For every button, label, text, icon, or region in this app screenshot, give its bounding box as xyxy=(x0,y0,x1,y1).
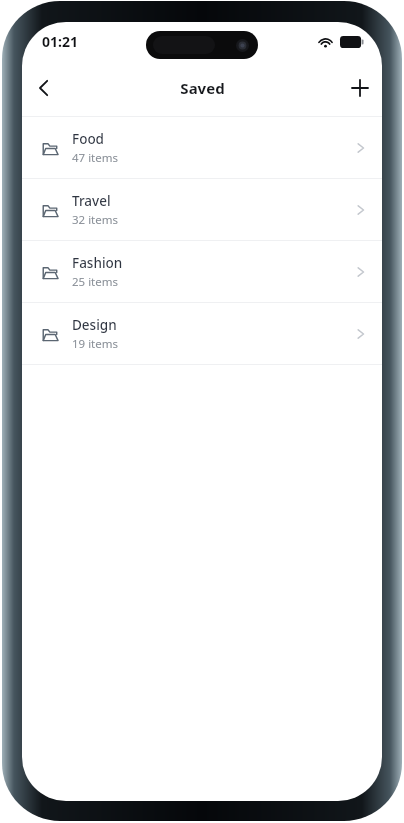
button[interactable]: Add xyxy=(338,66,382,110)
button[interactable]: Design xyxy=(22,303,382,364)
button[interactable]: Back xyxy=(22,66,66,110)
staticText: 32 items xyxy=(72,212,119,228)
staticText: Travel xyxy=(72,192,111,210)
staticText: Fashion xyxy=(72,254,123,272)
button[interactable]: Food xyxy=(22,117,382,178)
staticText: Design xyxy=(72,316,117,334)
staticText: Saved xyxy=(180,78,225,98)
staticText: 25 items xyxy=(72,274,119,290)
staticText: 19 items xyxy=(72,336,119,352)
button[interactable]: Travel xyxy=(22,179,382,240)
button[interactable]: Fashion xyxy=(22,241,382,302)
staticText: 47 items xyxy=(72,150,119,166)
staticText: 01:21 xyxy=(42,32,78,51)
staticText: Food xyxy=(72,130,104,148)
